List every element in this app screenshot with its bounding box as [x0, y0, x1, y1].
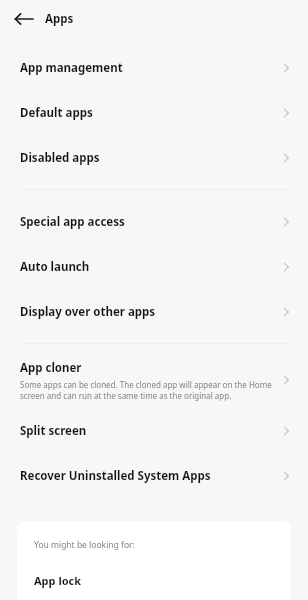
staticText: App management — [20, 60, 123, 76]
staticText: Display over other apps — [20, 304, 156, 320]
staticText: Disabled apps — [20, 150, 100, 166]
staticText: Apps — [45, 11, 74, 27]
button[interactable]: App cloner — [0, 352, 308, 408]
staticText: App cloner — [20, 360, 82, 376]
staticText: Some apps can be cloned. The cloned app … — [20, 379, 272, 401]
button[interactable]: Default apps — [0, 90, 308, 135]
staticText: App lock — [34, 573, 82, 588]
button[interactable]: App management — [0, 45, 308, 90]
staticText: Default apps — [20, 105, 93, 121]
button[interactable]: App lock — [17, 565, 291, 595]
staticText: Recover Uninstalled System Apps — [20, 468, 211, 484]
button[interactable]: Special app access — [0, 199, 308, 244]
staticText: Special app access — [20, 214, 125, 230]
button[interactable]: Back — [10, 5, 38, 33]
staticText: Split screen — [20, 423, 87, 439]
button[interactable]: Recover Uninstalled System Apps — [0, 453, 308, 498]
button[interactable]: Display over other apps — [0, 289, 308, 334]
staticText: You might be looking for: — [34, 539, 135, 551]
button[interactable]: Auto launch — [0, 244, 308, 289]
button[interactable]: Split screen — [0, 408, 308, 453]
staticText: Auto launch — [20, 259, 90, 275]
button[interactable]: Disabled apps — [0, 135, 308, 180]
